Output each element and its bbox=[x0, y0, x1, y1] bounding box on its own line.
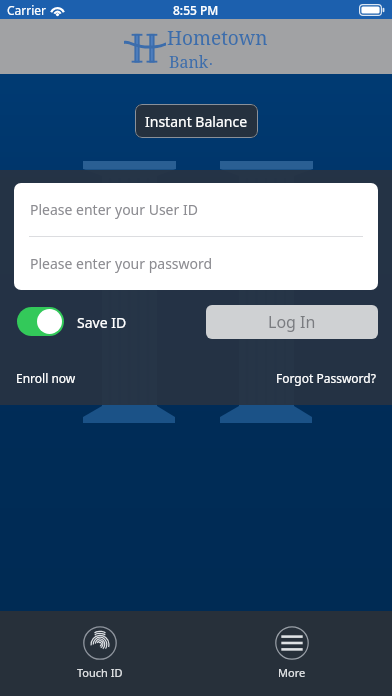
staticText: 8:55 PM bbox=[173, 2, 219, 18]
button[interactable]: Touch ID bbox=[60, 626, 140, 680]
staticText: Carrier bbox=[7, 2, 47, 18]
other: More bbox=[275, 626, 309, 660]
button[interactable]: Log In bbox=[206, 305, 378, 339]
staticText: Enroll now bbox=[16, 370, 76, 386]
other: Touch ID bbox=[83, 626, 117, 660]
staticText: Log In bbox=[268, 311, 316, 333]
staticText: Please enter your password bbox=[30, 254, 213, 273]
button[interactable]: Instant Balance bbox=[135, 104, 258, 138]
staticText: Instant Balance bbox=[145, 112, 248, 131]
staticText: Forgot Password? bbox=[276, 370, 376, 386]
staticText: Hometown bbox=[167, 25, 268, 51]
staticText: Touch ID bbox=[77, 665, 123, 680]
staticText: Save ID bbox=[77, 313, 127, 332]
button[interactable]: Please enter your password bbox=[14, 237, 378, 290]
staticText: Please enter your User ID bbox=[30, 200, 198, 219]
staticText: Bank bbox=[169, 51, 209, 73]
button[interactable]: Enroll now bbox=[10, 367, 82, 389]
staticText: More bbox=[278, 665, 306, 680]
button[interactable]: Please enter your User ID bbox=[14, 183, 378, 236]
button[interactable]: More bbox=[252, 626, 332, 680]
button[interactable]: Forgot Password? bbox=[270, 367, 382, 389]
button[interactable]: Save ID toggle bbox=[17, 307, 64, 336]
staticText: · bbox=[209, 53, 213, 73]
